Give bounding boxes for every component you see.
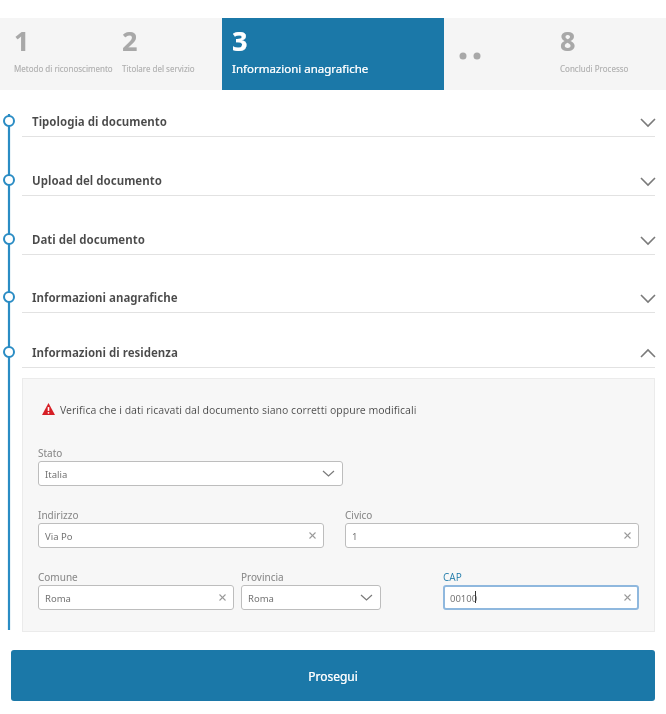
button[interactable]: Select Italia <box>38 461 343 486</box>
button[interactable]: Informazioni di residenza <box>22 332 655 372</box>
staticText: Verifica che i dati ricavati dal documen… <box>60 403 417 417</box>
staticText: Via Po <box>45 530 73 543</box>
staticText: Concludi Processo <box>560 63 629 74</box>
button[interactable]: Upload del documento <box>22 160 655 200</box>
staticText: Informazioni di residenza <box>32 345 178 361</box>
staticText: 8 <box>560 22 576 59</box>
staticText: Prosegui <box>308 668 358 684</box>
staticText: Tipologia di documento <box>32 114 168 130</box>
button[interactable]: 8 <box>556 18 662 90</box>
button[interactable]: 1 <box>10 18 116 90</box>
staticText: Dati del documento <box>32 232 145 248</box>
button[interactable]: 3 <box>222 18 444 90</box>
staticText: Upload del documento <box>32 173 162 189</box>
staticText: Informazioni anagrafiche <box>232 61 369 77</box>
button[interactable]: Clear <box>621 529 634 542</box>
button[interactable]: 2 <box>118 18 224 90</box>
staticText: Roma <box>45 592 71 605</box>
staticText: Civico <box>345 508 373 522</box>
button[interactable]: Clear <box>621 591 634 604</box>
staticText: Indirizzo <box>38 508 79 522</box>
staticText: Stato <box>38 446 63 460</box>
staticText: Titolare del servizio <box>122 63 195 74</box>
button[interactable]: More steps <box>458 48 486 64</box>
staticText: Italia <box>45 468 68 481</box>
staticText: CAP <box>443 570 462 584</box>
staticText: Informazioni anagrafiche <box>32 290 178 306</box>
staticText: 1 <box>352 530 358 543</box>
button[interactable]: Roma <box>38 585 234 610</box>
staticText: 3 <box>232 22 248 59</box>
button[interactable]: Via Po <box>38 523 324 548</box>
staticText: Comune <box>38 570 78 584</box>
button[interactable]: Dati del documento <box>22 219 655 259</box>
button[interactable]: 00100 <box>443 585 639 610</box>
staticText: Metodo di riconoscimento <box>14 63 113 74</box>
staticText: 00100 <box>450 592 478 605</box>
button[interactable]: Select Roma <box>241 585 381 610</box>
staticText: Provincia <box>241 570 284 584</box>
button[interactable]: Prosegui <box>11 650 655 701</box>
button[interactable]: 1 <box>345 523 639 548</box>
staticText: 1 <box>14 22 30 59</box>
staticText: Roma <box>248 592 274 605</box>
button[interactable]: Tipologia di documento <box>22 101 655 141</box>
button[interactable]: Clear <box>216 591 229 604</box>
button[interactable]: Informazioni anagrafiche <box>22 277 655 317</box>
staticText: 2 <box>122 22 138 59</box>
button[interactable]: Clear <box>306 529 319 542</box>
